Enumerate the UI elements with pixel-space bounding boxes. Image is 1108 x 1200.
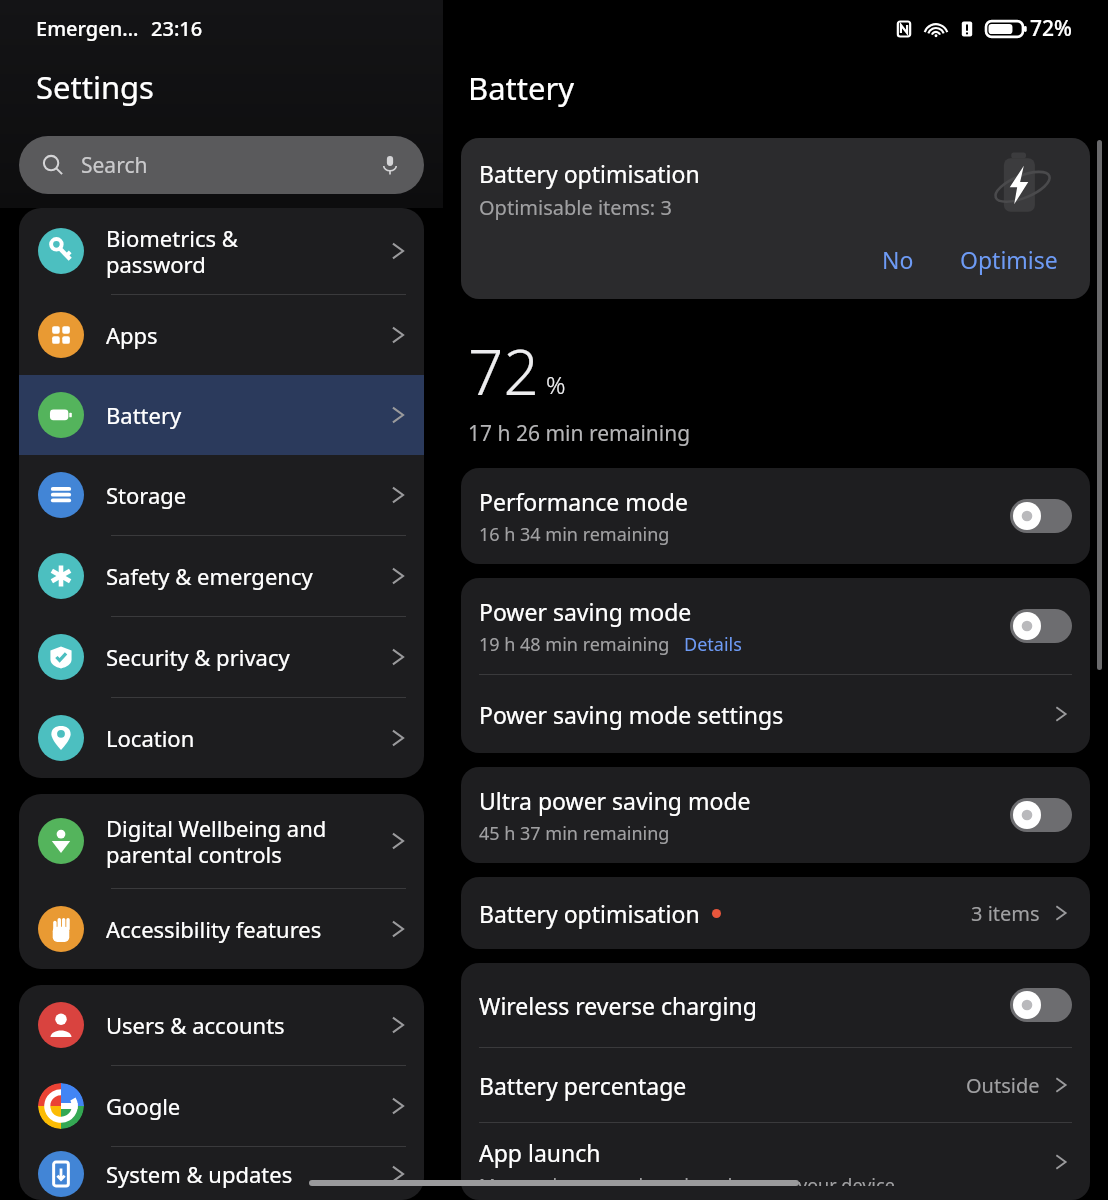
staticText: Outside	[966, 1072, 1040, 1099]
button[interactable]: Optimise	[950, 238, 1068, 281]
button[interactable]: App launch	[461, 1123, 1090, 1200]
staticText: 19 h 48 min remaining	[479, 632, 670, 657]
staticText: 72%	[1030, 14, 1072, 43]
staticText: Digital Wellbeing and parental controls	[106, 813, 386, 870]
staticText: Ultra power saving mode	[479, 785, 751, 816]
button[interactable]: Toggle	[1010, 988, 1072, 1022]
button[interactable]: Battery	[19, 375, 424, 455]
button[interactable]: Users & accounts	[19, 985, 424, 1065]
staticText: Battery optimisation	[479, 158, 700, 189]
staticText: Wireless reverse charging	[479, 990, 757, 1021]
button[interactable]: Location	[19, 698, 424, 778]
button[interactable]: Toggle	[1010, 499, 1072, 533]
staticText: Performance mode	[479, 486, 688, 517]
button[interactable]: Search	[19, 136, 424, 194]
staticText: 17 h 26 min remaining	[468, 419, 691, 448]
button[interactable]: Safety & emergency	[19, 536, 424, 616]
button[interactable]: Power saving mode settings	[461, 675, 1090, 753]
button[interactable]: Toggle	[1010, 609, 1072, 643]
button[interactable]: Details	[684, 632, 742, 657]
staticText: Safety & emergency	[106, 561, 386, 591]
button[interactable]: Apps	[19, 295, 424, 375]
button[interactable]: Accessibility features	[19, 889, 424, 969]
staticText: Optimisable items: 3	[479, 194, 672, 221]
button[interactable]: Google	[19, 1066, 424, 1146]
button[interactable]: Ultra power saving mode	[461, 767, 1090, 863]
staticText: Users & accounts	[106, 1010, 386, 1040]
staticText: Battery	[106, 400, 386, 430]
staticText: Battery optimisation	[479, 898, 700, 929]
button[interactable]: No	[872, 238, 924, 281]
button[interactable]: Storage	[19, 455, 424, 535]
staticText: Biometrics & password	[106, 223, 386, 280]
staticText: Manage how apps launch and run on your d…	[479, 1173, 895, 1186]
button[interactable]: Battery optimisation	[461, 877, 1090, 949]
staticText: Optimise	[960, 244, 1058, 275]
staticText: Battery percentage	[479, 1070, 687, 1101]
button[interactable]: Wireless reverse charging	[461, 963, 1090, 1047]
staticText: 3 items	[971, 900, 1040, 927]
staticText: Emergen…	[36, 15, 139, 42]
staticText: Settings	[36, 66, 154, 108]
staticText: %	[546, 368, 566, 401]
staticText: Location	[106, 723, 386, 753]
staticText: App launch	[479, 1137, 601, 1168]
staticText: Storage	[106, 480, 386, 510]
staticText: No	[882, 244, 914, 275]
button[interactable]: Battery percentage	[461, 1048, 1090, 1122]
staticText: Battery	[468, 67, 575, 109]
staticText: System & updates	[106, 1159, 386, 1189]
button[interactable]: Toggle	[1010, 798, 1072, 832]
staticText: Power saving mode settings	[479, 699, 784, 730]
staticText: Details	[684, 632, 742, 657]
button[interactable]: Security & privacy	[19, 617, 424, 697]
staticText: Power saving mode	[479, 596, 692, 627]
staticText: 45 h 37 min remaining	[479, 821, 670, 846]
staticText: Security & privacy	[106, 642, 386, 672]
staticText: 23:16	[151, 15, 203, 42]
staticText: Google	[106, 1091, 386, 1121]
staticText: 72	[468, 329, 539, 413]
button[interactable]: Performance mode	[461, 468, 1090, 564]
staticText: Apps	[106, 320, 386, 350]
button[interactable]: Power saving mode	[461, 578, 1090, 674]
button[interactable]: System & updates	[19, 1147, 424, 1200]
staticText: 16 h 34 min remaining	[479, 522, 670, 547]
button[interactable]: Biometrics & password	[19, 208, 424, 294]
staticText: Accessibility features	[106, 914, 386, 944]
staticText: Search	[81, 151, 378, 180]
button[interactable]: Digital Wellbeing and parental controls	[19, 794, 424, 888]
